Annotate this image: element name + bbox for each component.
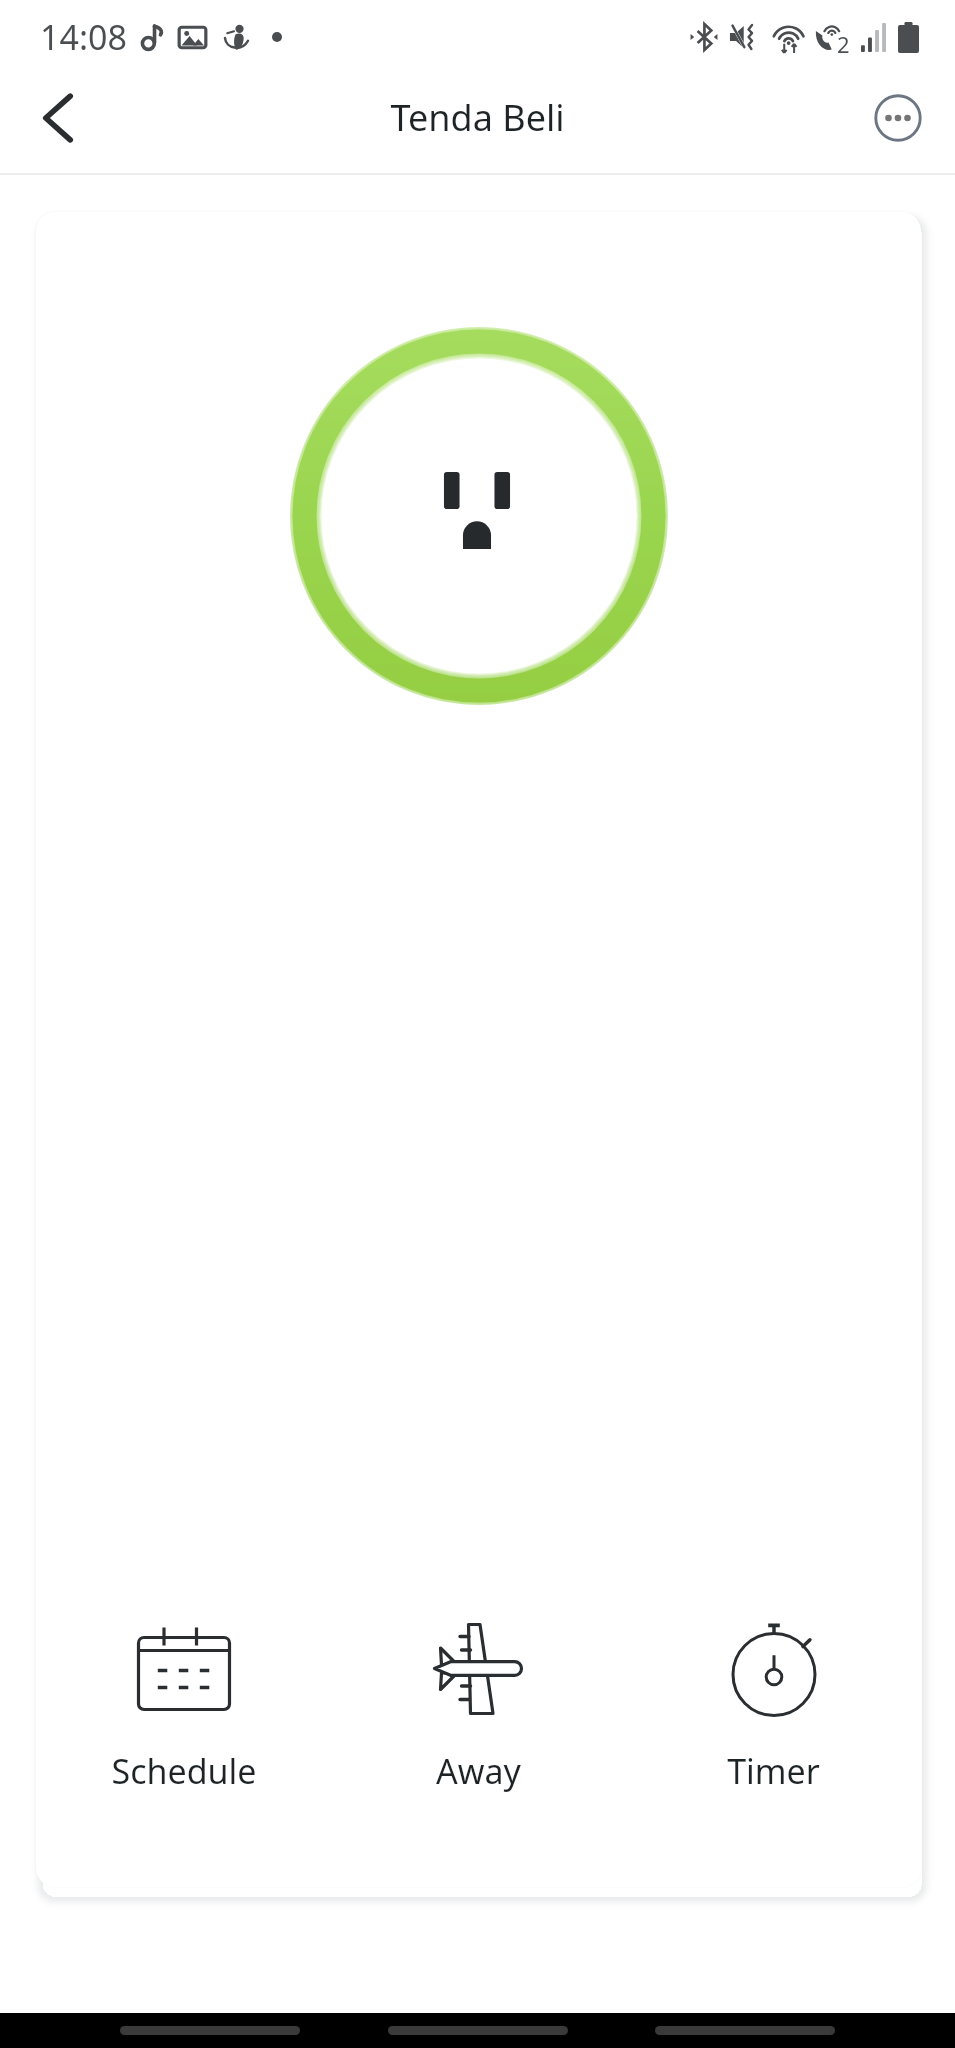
button[interactable]: Schedule xyxy=(36,1612,331,1800)
button[interactable]: Away xyxy=(331,1612,626,1800)
button[interactable]: Home xyxy=(388,2026,568,2035)
staticText: Schedule xyxy=(111,1748,257,1794)
staticText: 2 xyxy=(837,29,850,59)
staticText: Timer xyxy=(727,1748,820,1794)
button[interactable]: Timer xyxy=(626,1612,921,1800)
button[interactable]: Recent apps xyxy=(120,2026,300,2035)
staticText: Away xyxy=(436,1748,521,1794)
button[interactable]: Back xyxy=(22,82,94,154)
button[interactable]: Power toggle xyxy=(290,327,668,705)
staticText: Tenda Beli xyxy=(390,93,565,142)
staticText: 14:08 xyxy=(40,14,127,60)
button[interactable]: More options xyxy=(868,88,928,148)
button[interactable]: Back xyxy=(655,2026,835,2035)
